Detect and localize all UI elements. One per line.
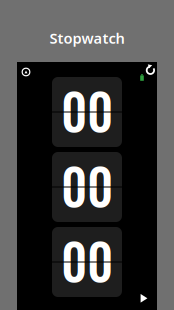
staticText: Stopwatch: [49, 28, 124, 48]
button[interactable]: Start: [140, 294, 148, 303]
staticText: 00: [61, 73, 113, 146]
staticText: 00: [61, 223, 113, 296]
button[interactable]: Settings: [21, 67, 31, 77]
button[interactable]: Reset: [145, 64, 156, 76]
staticText: 00: [61, 148, 113, 221]
